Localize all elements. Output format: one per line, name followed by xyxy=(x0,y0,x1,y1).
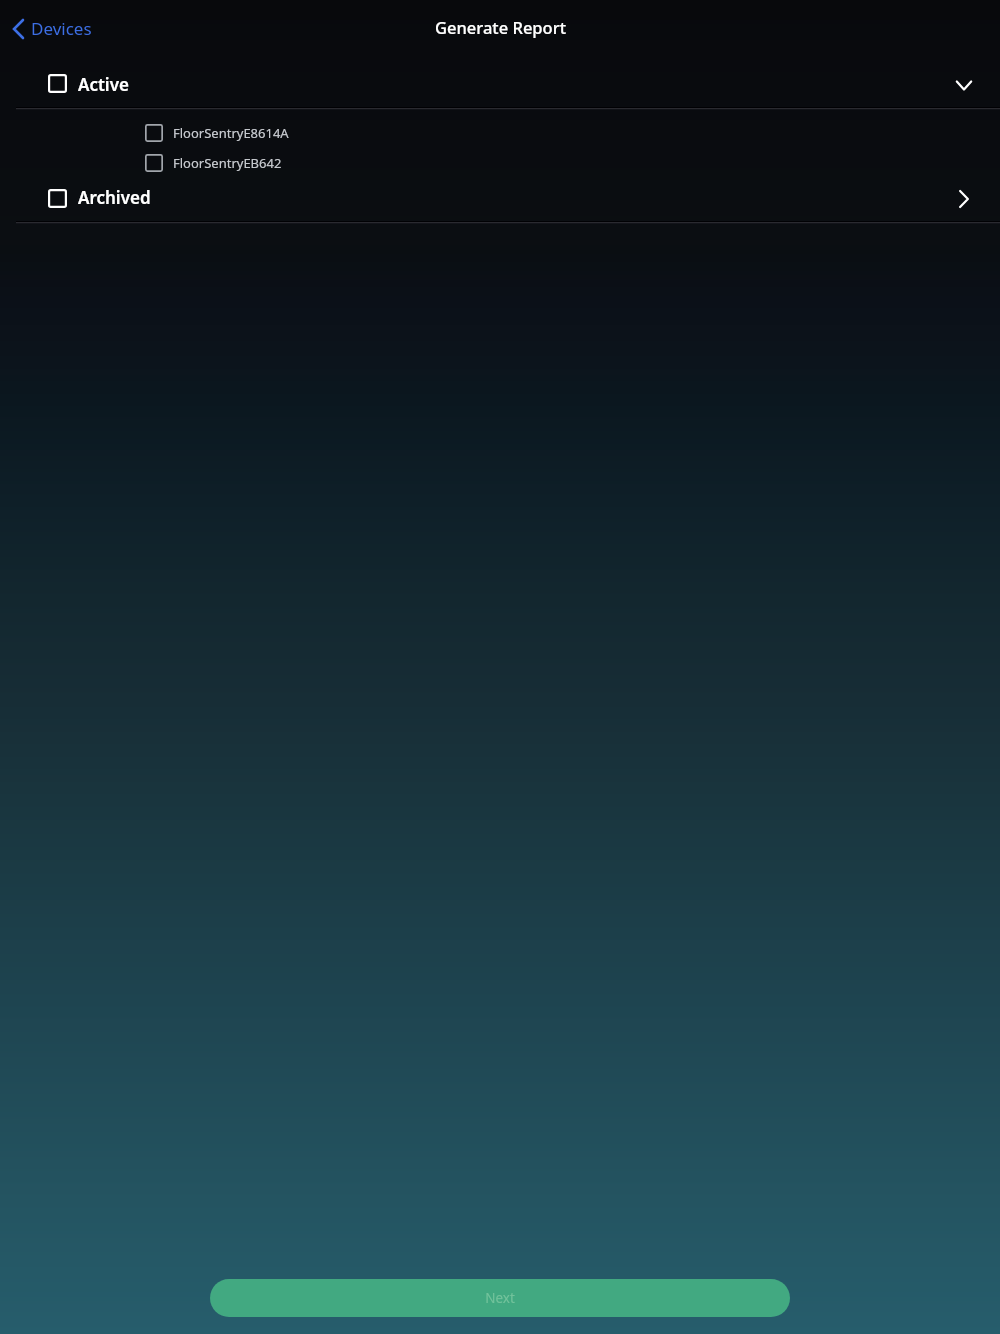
button[interactable]: FloorSentryE8614A xyxy=(0,118,1000,148)
button[interactable]: FloorSentryEB642 xyxy=(0,148,1000,178)
other: Collapse Active xyxy=(954,74,974,94)
staticText: Generate Report xyxy=(435,16,566,38)
staticText: FloorSentryEB642 xyxy=(173,154,282,172)
button[interactable]: Next xyxy=(210,1279,790,1317)
staticText: Devices xyxy=(31,17,92,40)
button[interactable]: Active xyxy=(0,60,1000,107)
other: Expand Archived xyxy=(954,189,974,209)
staticText: Archived xyxy=(78,186,151,209)
staticText: FloorSentryE8614A xyxy=(173,124,289,142)
staticText: Active xyxy=(78,73,129,96)
button[interactable]: Archived xyxy=(0,178,1000,221)
staticText: Next xyxy=(485,1289,515,1307)
button[interactable]: Back to Devices xyxy=(8,13,96,44)
